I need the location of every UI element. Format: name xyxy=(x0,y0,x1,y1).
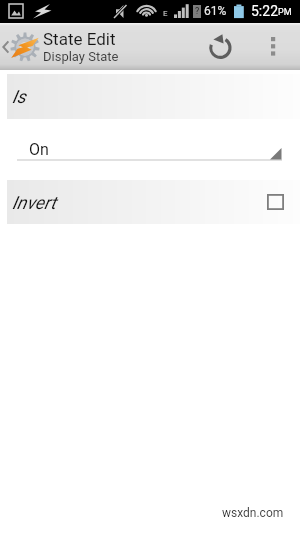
staticText: Display State xyxy=(43,49,119,64)
staticText: 61% xyxy=(204,4,227,18)
staticText: wsxdn.com xyxy=(222,506,284,520)
button[interactable]: Navigate up xyxy=(0,23,300,70)
staticText: On xyxy=(29,140,49,159)
button[interactable]: Invert xyxy=(7,180,300,224)
button[interactable]: On xyxy=(0,139,300,161)
staticText: Invert xyxy=(12,192,57,213)
staticText: ? xyxy=(195,6,200,17)
staticText: PM xyxy=(278,7,292,18)
staticText: 5:22 xyxy=(251,3,278,19)
button[interactable]: More options xyxy=(258,23,289,70)
staticText: Is xyxy=(12,86,26,107)
staticText: E xyxy=(163,9,168,18)
button[interactable]: Reset xyxy=(197,23,245,70)
staticText: State Edit xyxy=(43,29,116,49)
